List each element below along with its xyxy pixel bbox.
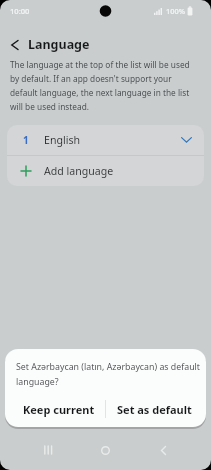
button[interactable]: Keep current xyxy=(5,395,105,423)
staticText: 1 xyxy=(23,133,29,147)
button[interactable]: Set as default xyxy=(106,395,206,423)
staticText: Language xyxy=(28,36,90,53)
button[interactable] xyxy=(0,31,28,59)
staticText: 10:00 xyxy=(10,6,30,16)
staticText: English xyxy=(44,133,81,147)
staticText: Set Azərbaycan (latın, Azərbaycan) as de… xyxy=(16,361,201,388)
staticText: Add language xyxy=(44,164,114,178)
button[interactable] xyxy=(36,440,60,460)
staticText: Set as default xyxy=(117,402,192,417)
staticText: The language at the top of the list will… xyxy=(10,59,190,112)
staticText: 100% xyxy=(166,6,185,16)
button[interactable] xyxy=(93,440,117,460)
button[interactable] xyxy=(151,440,175,460)
button[interactable]: 1 xyxy=(7,125,204,155)
button[interactable]: Add language xyxy=(7,156,204,186)
staticText: Keep current xyxy=(23,402,95,417)
